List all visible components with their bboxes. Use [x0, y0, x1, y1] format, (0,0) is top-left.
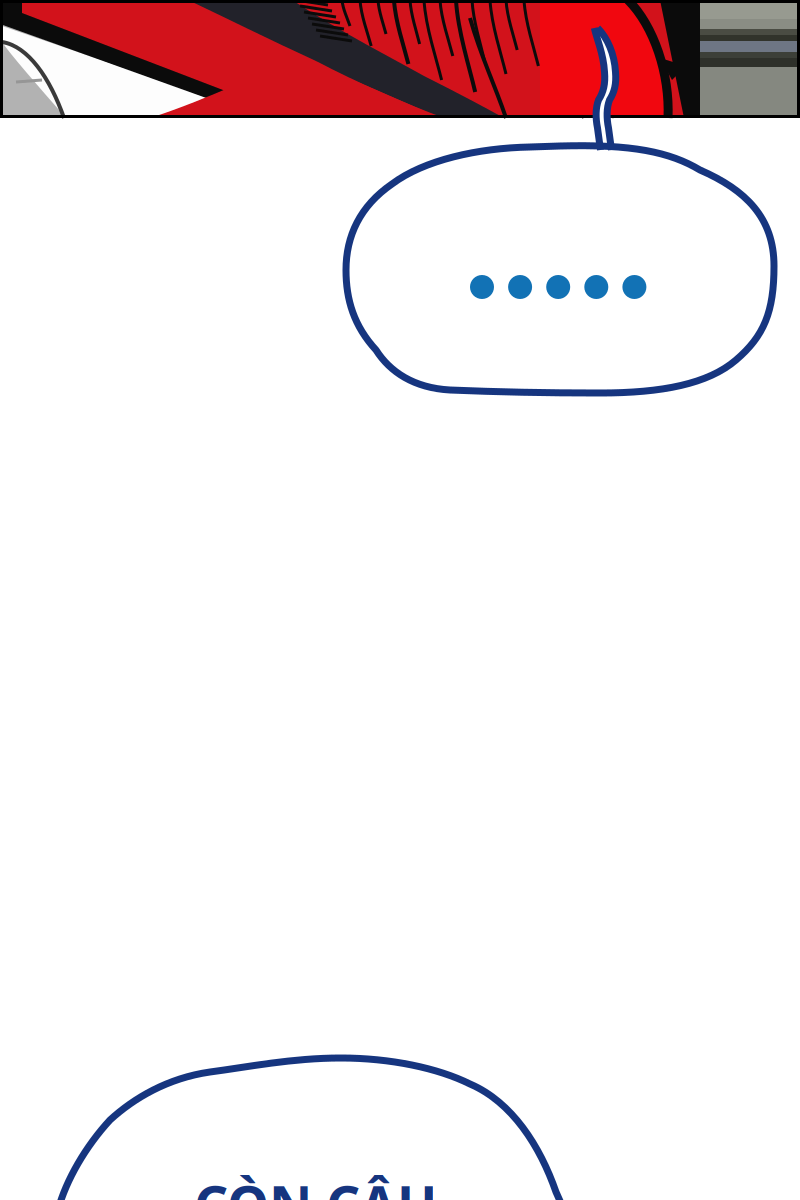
staticText: CÒN CẬU [194, 1169, 437, 1200]
